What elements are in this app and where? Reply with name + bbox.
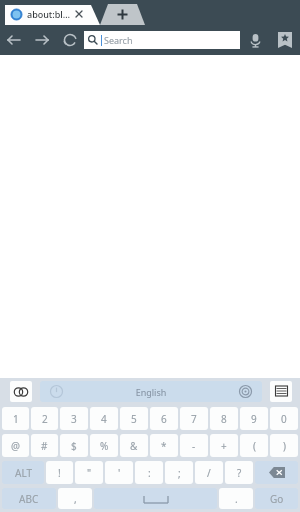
staticText: 2	[42, 412, 48, 426]
button[interactable]: !	[46, 461, 73, 484]
staticText: :	[148, 466, 151, 480]
button[interactable]: 4	[90, 407, 118, 430]
staticText: Go	[270, 492, 284, 506]
button[interactable]: about:bl…	[5, 3, 100, 25]
staticText: %	[100, 439, 109, 453]
button[interactable]: ;	[165, 461, 193, 484]
button[interactable]: #	[31, 434, 58, 457]
staticText: 3	[71, 412, 77, 426]
button[interactable]: )	[270, 434, 298, 457]
button[interactable]: 8	[210, 407, 238, 430]
staticText: 1	[13, 412, 19, 426]
staticText: @	[11, 439, 20, 453]
staticText: 7	[191, 412, 197, 426]
button[interactable]: Backspace	[255, 461, 298, 484]
staticText: '	[118, 466, 121, 480]
button[interactable]: +	[210, 434, 238, 457]
button[interactable]: $	[60, 434, 88, 457]
staticText: 0	[281, 412, 287, 426]
staticText: +	[221, 439, 227, 453]
staticText: *	[161, 439, 167, 453]
staticText: -	[192, 439, 196, 453]
button[interactable]: Go	[255, 488, 298, 509]
button[interactable]: Voice search	[240, 25, 270, 55]
staticText: 5	[131, 412, 137, 426]
button[interactable]: Bookmarks	[270, 25, 300, 55]
button[interactable]: ABC	[2, 488, 56, 509]
staticText: ?	[237, 466, 242, 480]
button[interactable]: Emoji	[10, 381, 32, 402]
button[interactable]: New tab	[100, 4, 145, 25]
staticText: about:bl…	[27, 8, 71, 20]
staticText: &	[130, 439, 138, 453]
staticText: ;	[178, 466, 181, 480]
button[interactable]: *	[150, 434, 178, 457]
staticText: 9	[251, 412, 257, 426]
button[interactable]: (	[240, 434, 268, 457]
button[interactable]: &	[120, 434, 148, 457]
staticText: !	[58, 466, 61, 480]
button[interactable]: Reload	[56, 26, 84, 54]
staticText: 6	[161, 412, 167, 426]
button[interactable]: %	[90, 434, 118, 457]
staticText: 8	[221, 412, 227, 426]
button[interactable]: "	[75, 461, 103, 484]
button[interactable]: 0	[270, 407, 298, 430]
staticText: (	[253, 439, 256, 453]
button[interactable]: 2	[31, 407, 58, 430]
staticText: ,	[74, 492, 77, 506]
button[interactable]: Back	[0, 26, 28, 54]
staticText: ABC	[19, 492, 39, 506]
staticText: $	[71, 439, 77, 453]
staticText: )	[283, 439, 286, 453]
staticText: English	[63, 386, 239, 398]
staticText: 4	[101, 412, 107, 426]
staticText: /	[207, 466, 211, 480]
button[interactable]: 7	[180, 407, 208, 430]
button[interactable]: /	[195, 461, 223, 484]
button[interactable]: 9	[240, 407, 268, 430]
button[interactable]: '	[105, 461, 133, 484]
button[interactable]: Forward	[28, 26, 56, 54]
staticText: "	[87, 466, 92, 480]
button[interactable]: Space	[94, 488, 217, 509]
button[interactable]: English	[40, 381, 262, 402]
button[interactable]: 6	[150, 407, 178, 430]
button[interactable]: Keyboard settings	[270, 381, 292, 402]
button[interactable]: @	[2, 434, 29, 457]
button[interactable]: 3	[60, 407, 88, 430]
staticText: .	[235, 492, 238, 506]
staticText: Search	[104, 34, 133, 46]
button[interactable]: ,	[58, 488, 92, 509]
button[interactable]: ?	[225, 461, 253, 484]
button[interactable]: ALT	[2, 461, 44, 484]
button[interactable]: Search	[84, 31, 240, 49]
button[interactable]: :	[135, 461, 163, 484]
button[interactable]: 5	[120, 407, 148, 430]
button[interactable]: .	[219, 488, 253, 509]
staticText: #	[41, 439, 48, 453]
button[interactable]: -	[180, 434, 208, 457]
button[interactable]: 1	[2, 407, 29, 430]
staticText: ALT	[15, 466, 32, 480]
